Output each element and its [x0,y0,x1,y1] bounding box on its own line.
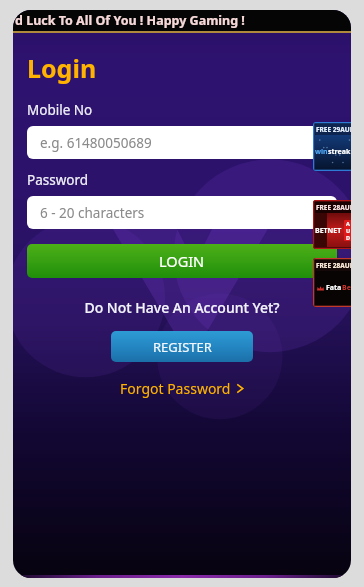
button[interactable]: REGISTER [111,331,253,362]
staticText: 6 - 20 characters [40,204,145,222]
button[interactable]: LOGIN [27,244,337,278]
staticText: LOGIN [159,251,205,271]
staticText: e.g. 61480050689 [40,134,152,152]
staticText: Password [27,171,89,189]
button[interactable]: Forgot Password [114,377,250,400]
staticText: streak [328,147,351,157]
staticText: Do Not Have An Account Yet? [13,298,351,317]
staticText: Mobile No [27,101,93,119]
staticText: win [315,147,328,157]
staticText: Fata [326,283,342,293]
button[interactable]: BetNet promotion [313,200,351,249]
button[interactable]: 6 - 20 characters [27,196,337,229]
staticText: FREE 28AUD [316,203,351,212]
staticText: d Luck To All Of You ! Happy Gaming ! [15,12,245,29]
staticText: BETNET [315,226,342,236]
staticText: FREE 28AUD [316,261,351,270]
staticText: AUD [346,220,351,241]
staticText: Forgot Password [120,379,231,398]
staticText: REGISTER [153,338,212,356]
staticText: Login [27,51,97,85]
button[interactable]: e.g. 61480050689 [27,126,337,159]
button[interactable]: FataBet promotion [313,258,351,307]
staticText: Bet [342,283,351,293]
staticText: FREE 29AUD [316,125,351,134]
button[interactable]: WinStreak9 promotion [313,122,351,171]
